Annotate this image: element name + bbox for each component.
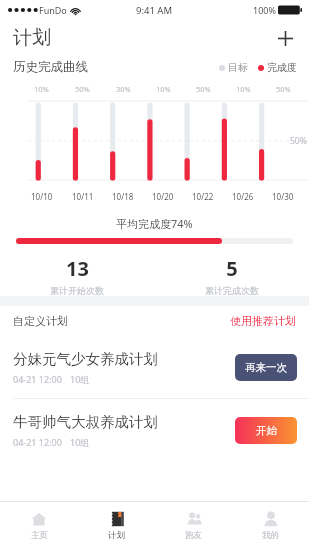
staticText: 历史完成曲线 — [13, 59, 88, 75]
staticText: 牛哥帅气大叔养成计划 — [13, 413, 158, 431]
staticText: FunDo — [39, 4, 67, 16]
staticText: 50% — [276, 84, 291, 94]
staticText: 开始 — [256, 424, 277, 437]
staticText: 10/26 — [232, 191, 254, 202]
staticText: 目标 — [228, 61, 248, 74]
staticText: 完成度 — [267, 61, 297, 74]
staticText: 10/22 — [192, 191, 214, 202]
staticText: 计划 — [108, 530, 125, 541]
staticText: 13 — [66, 255, 89, 282]
button[interactable]: Add plan — [271, 24, 299, 52]
staticText: 10组 — [70, 436, 90, 448]
button[interactable]: 再来一次 — [235, 354, 297, 381]
staticText: 计划 — [13, 26, 51, 50]
staticText: 10/20 — [152, 191, 174, 202]
button[interactable]: 分妹元气少女养成计划 — [0, 336, 309, 398]
staticText: 10/18 — [112, 191, 134, 202]
staticText: 自定义计划 — [13, 314, 68, 328]
button[interactable]: 主页 — [0, 502, 78, 550]
staticText: 50% — [75, 84, 90, 94]
staticText: 10% — [34, 84, 49, 94]
staticText: 主页 — [31, 530, 48, 541]
staticText: 10% — [156, 84, 171, 94]
button[interactable]: 我的 — [232, 502, 309, 550]
staticText: 100% — [253, 4, 276, 16]
staticText: 再来一次 — [245, 361, 287, 374]
button[interactable]: 计划 — [78, 502, 155, 550]
staticText: 04-21 12:00 — [13, 373, 62, 385]
staticText: 10/30 — [272, 191, 294, 202]
button[interactable]: 自定义计划 — [13, 306, 296, 336]
staticText: 累计完成次数 — [205, 285, 259, 296]
staticText: 我的 — [262, 530, 279, 541]
staticText: 10% — [236, 84, 251, 94]
staticText: 累计开始次数 — [50, 285, 104, 296]
staticText: 30% — [116, 84, 131, 94]
button[interactable]: 牛哥帅气大叔养成计划 — [0, 399, 309, 461]
staticText: 50% — [196, 84, 211, 94]
staticText: 9:41 AM — [136, 4, 173, 17]
button[interactable]: 跑友 — [155, 502, 232, 550]
staticText: 使用推荐计划 — [230, 314, 296, 328]
staticText: 50% — [290, 135, 307, 147]
staticText: 分妹元气少女养成计划 — [13, 350, 158, 368]
staticText: 10组 — [70, 373, 90, 385]
staticText: 10/10 — [31, 191, 53, 202]
staticText: 跑友 — [185, 530, 202, 541]
button[interactable]: 开始 — [235, 417, 297, 444]
staticText: 04-21 12:00 — [13, 436, 62, 448]
staticText: 平均完成度74% — [116, 216, 193, 231]
staticText: 5 — [226, 255, 238, 282]
staticText: 10/11 — [72, 191, 94, 202]
